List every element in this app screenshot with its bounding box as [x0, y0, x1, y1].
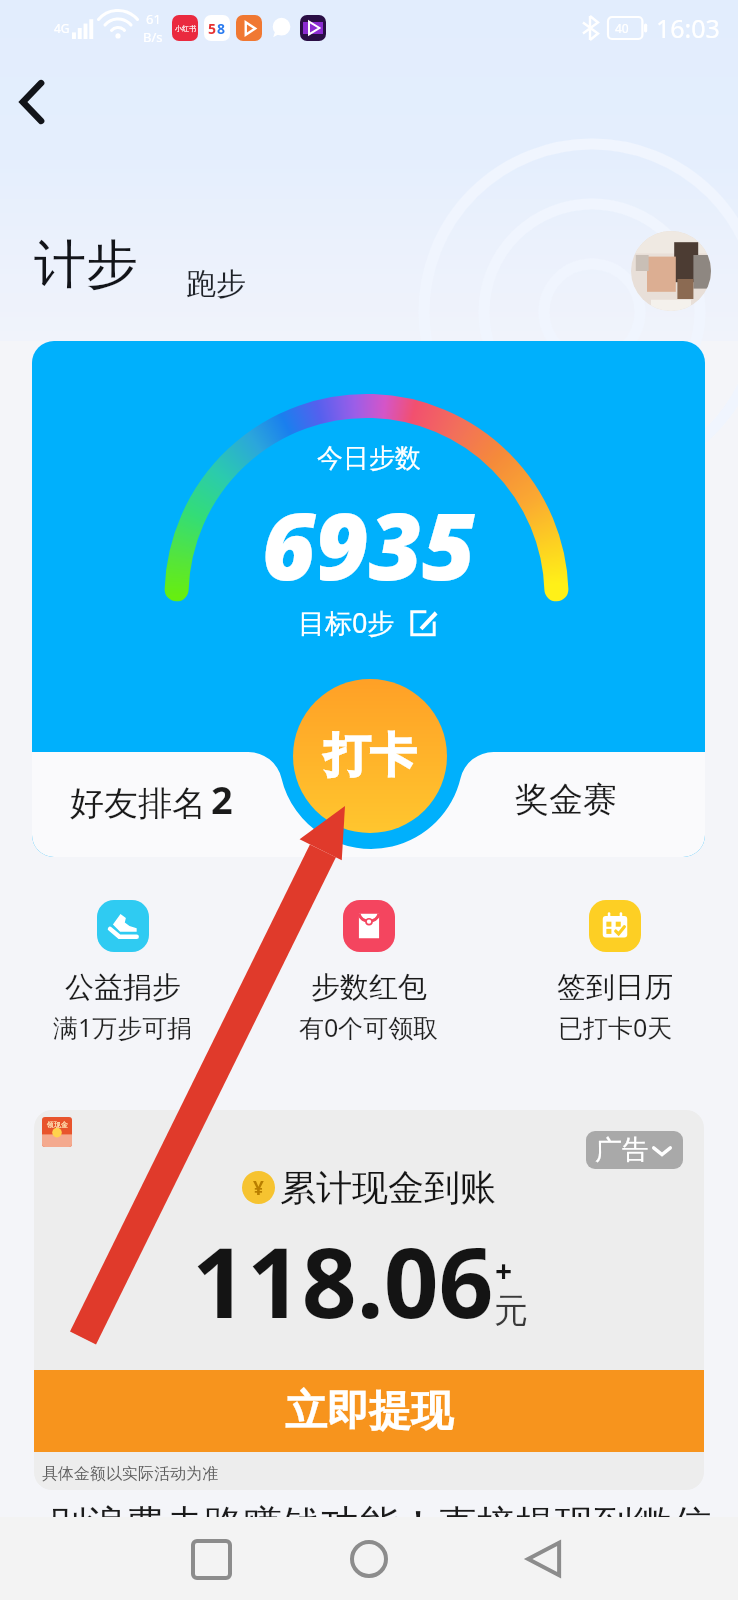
button[interactable]: Back: [2, 72, 62, 132]
staticText: 目标0步: [298, 604, 395, 641]
staticText: 有0个可领取: [299, 1010, 439, 1044]
staticText: 立即提现: [285, 1385, 453, 1438]
staticText: 计步: [34, 232, 138, 298]
staticText: 公益捐步: [65, 969, 181, 1006]
staticText: 别浪费走路赚钱功能！直接提现到微信: [48, 1500, 711, 1549]
button[interactable]: 签到日历: [492, 900, 738, 1044]
button[interactable]: 领现金: [34, 1110, 704, 1490]
staticText: 元: [494, 1289, 528, 1332]
staticText: 2: [211, 773, 233, 825]
staticText: ¥: [253, 1175, 264, 1201]
button[interactable]: 广告: [586, 1131, 683, 1169]
button[interactable]: 奖金赛: [368, 768, 705, 831]
staticText: 奖金赛: [515, 778, 617, 821]
staticText: 步数红包: [311, 969, 427, 1006]
staticText: 118.06: [192, 1215, 494, 1346]
staticText: 61: [146, 10, 161, 28]
staticText: 满1万步可捐: [53, 1010, 193, 1044]
button[interactable]: 立即提现: [34, 1370, 704, 1452]
staticText: 累计现金到账: [280, 1165, 496, 1210]
staticText: 好友排名: [70, 782, 206, 825]
staticText: 已打卡0天: [558, 1010, 673, 1044]
button[interactable]: Home: [333, 1523, 405, 1595]
button[interactable]: Recent apps: [175, 1523, 247, 1595]
staticText: 5: [208, 19, 217, 38]
staticText: 小红书: [175, 24, 196, 33]
button[interactable]: Edit goal: [407, 607, 439, 639]
staticText: 6935: [262, 482, 476, 607]
staticText: 跑步: [186, 265, 246, 303]
staticText: 广告: [595, 1133, 649, 1167]
staticText: 40: [615, 20, 629, 36]
staticText: +: [495, 1250, 513, 1291]
button[interactable]: 公益捐步: [0, 900, 246, 1044]
button[interactable]: 打卡: [293, 679, 447, 833]
button[interactable]: 步数红包: [246, 900, 492, 1044]
staticText: 4G: [54, 20, 70, 36]
staticText: 16:03: [656, 11, 720, 45]
staticText: 签到日历: [557, 969, 673, 1006]
staticText: 领现金: [47, 1120, 68, 1129]
button[interactable]: Profile: [631, 231, 711, 311]
staticText: 今日步数: [317, 442, 421, 475]
button[interactable]: Back: [508, 1523, 580, 1595]
staticText: 8: [217, 19, 226, 38]
staticText: B/s: [143, 28, 163, 46]
staticText: 具体金额以实际活动为准: [42, 1464, 218, 1484]
button[interactable]: 好友排名: [32, 763, 368, 835]
staticText: 打卡: [324, 727, 416, 785]
